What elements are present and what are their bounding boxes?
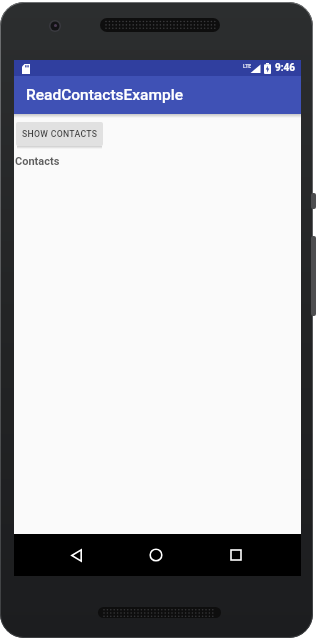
button[interactable] (222, 541, 250, 569)
staticText: 9:46 (275, 62, 296, 74)
button[interactable] (142, 541, 170, 569)
staticText: SHOW CONTACTS (22, 129, 98, 139)
staticText: Contacts (15, 155, 60, 168)
staticText: ReadContactsExample (26, 86, 184, 104)
staticText: LTE (243, 63, 252, 69)
button[interactable] (62, 541, 90, 569)
button[interactable]: SHOW CONTACTS (16, 122, 103, 146)
